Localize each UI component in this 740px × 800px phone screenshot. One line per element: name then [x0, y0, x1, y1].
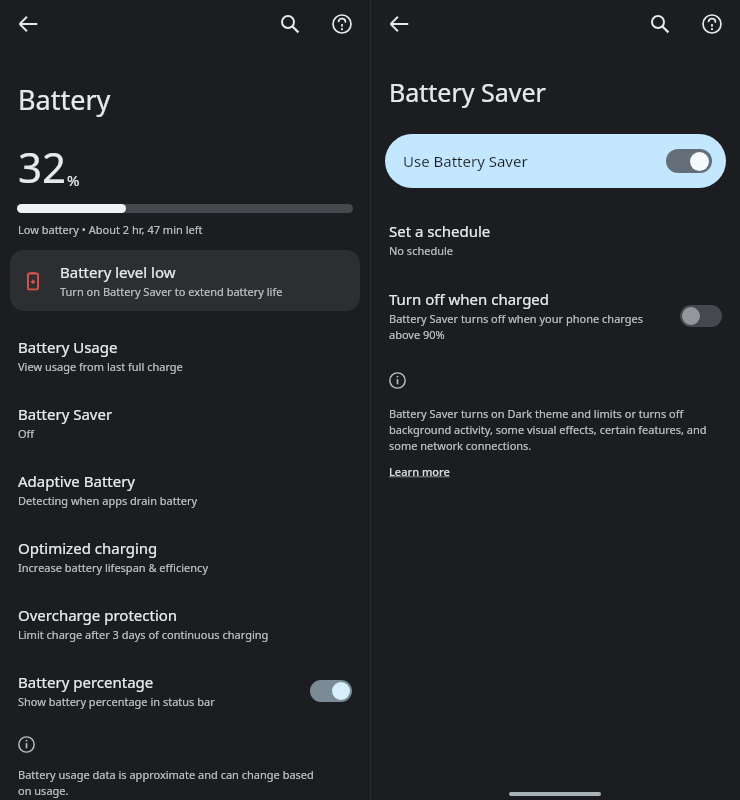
staticText: Detecting when apps drain battery	[18, 493, 198, 508]
button[interactable]: Battery Saver	[0, 393, 370, 452]
button[interactable]: Battery percentage	[0, 661, 370, 720]
staticText: Limit charge after 3 days of continuous …	[18, 627, 269, 642]
staticText: Battery Usage	[18, 337, 118, 357]
staticText: Battery Saver	[18, 404, 113, 424]
staticText: Off	[18, 426, 35, 441]
button[interactable]: Battery Usage	[0, 326, 370, 385]
staticText: Turn on Battery Saver to extend battery …	[60, 284, 283, 299]
button[interactable]: Back	[379, 4, 419, 44]
staticText: %	[67, 170, 80, 190]
button[interactable]: Adaptive Battery	[0, 460, 370, 519]
staticText: Turn off when charged	[389, 289, 550, 309]
staticText: Battery	[18, 81, 111, 118]
button[interactable]: Use Battery Saver	[385, 134, 726, 188]
staticText: 32	[18, 138, 67, 195]
button[interactable]: Search	[270, 4, 310, 44]
button[interactable]: Set a schedule	[371, 210, 740, 269]
staticText: Overcharge protection	[18, 605, 178, 625]
button[interactable]: Turn off when charged	[680, 305, 722, 327]
staticText: Set a schedule	[389, 221, 491, 241]
button[interactable]: Turn off when charged	[371, 281, 740, 350]
staticText: View usage from last full charge	[18, 359, 183, 374]
button[interactable]: Help	[322, 4, 362, 44]
button[interactable]: Learn more	[389, 464, 450, 479]
button[interactable]: Battery level low	[10, 250, 360, 311]
staticText: Learn more	[389, 464, 450, 479]
button[interactable]: Battery percentage	[310, 680, 352, 702]
staticText: Battery Saver turns off when your phone …	[389, 311, 668, 342]
staticText: Battery Saver	[389, 75, 546, 109]
staticText: Adaptive Battery	[18, 471, 136, 491]
staticText: Battery percentage	[18, 672, 154, 692]
button[interactable]: Search	[640, 4, 680, 44]
staticText: Battery usage data is approximate and ca…	[18, 767, 326, 799]
staticText: No schedule	[389, 243, 454, 258]
button[interactable]: Overcharge protection	[0, 594, 370, 653]
staticText: Show battery percentage in status bar	[18, 694, 215, 709]
staticText: Battery Saver turns on Dark theme and li…	[389, 406, 726, 453]
button[interactable]: Use Battery Saver toggle	[666, 149, 712, 173]
staticText: Increase battery lifespan & efficiency	[18, 560, 208, 575]
staticText: Battery level low	[60, 262, 176, 282]
button[interactable]: Back	[8, 4, 48, 44]
button[interactable]: Optimized charging	[0, 527, 370, 586]
staticText: Optimized charging	[18, 538, 158, 558]
button[interactable]: Help	[692, 4, 732, 44]
staticText: Low battery • About 2 hr, 47 min left	[18, 222, 203, 237]
staticText: Use Battery Saver	[403, 151, 666, 171]
